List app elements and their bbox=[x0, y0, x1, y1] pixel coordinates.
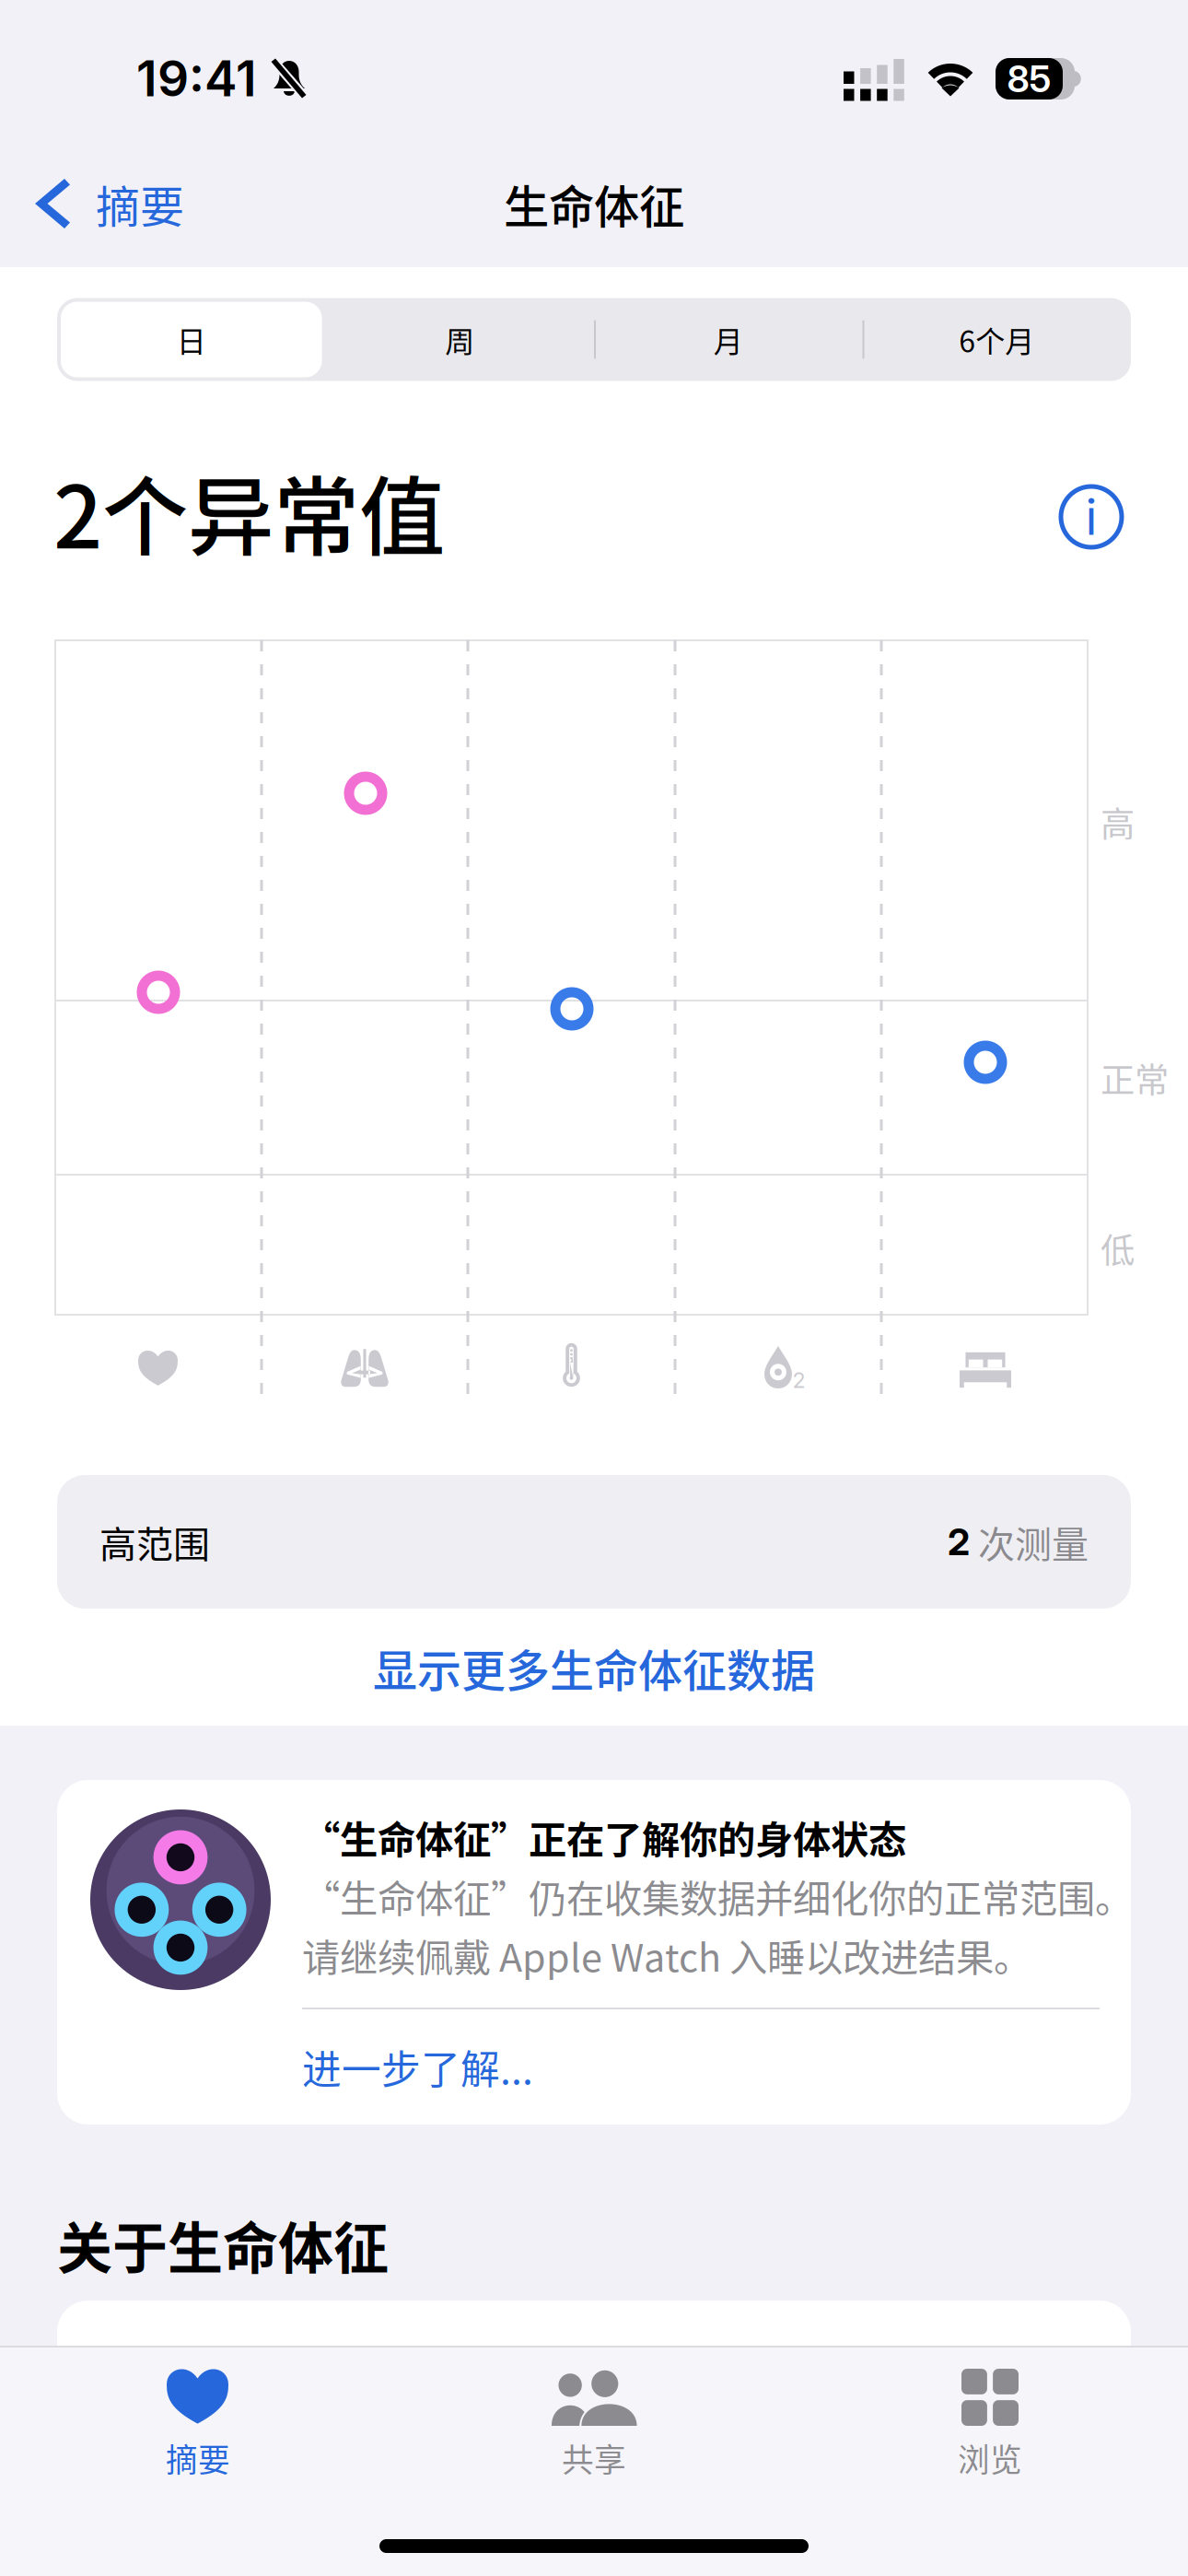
button[interactable]: 进一步了解... bbox=[302, 2009, 1100, 2125]
button[interactable]: 周 bbox=[326, 298, 594, 381]
staticText: 日 bbox=[177, 318, 206, 361]
staticText: 高范围 bbox=[99, 1515, 210, 1568]
staticText: 摘要 bbox=[96, 172, 184, 236]
button[interactable]: 6个月 bbox=[862, 298, 1131, 381]
staticText: 关于生命体征 bbox=[57, 2205, 389, 2285]
staticText: 进一步了解... bbox=[302, 2039, 533, 2095]
staticText: 19:41 bbox=[136, 49, 257, 108]
staticText: 低 bbox=[1101, 1224, 1135, 1273]
button[interactable]: 月 bbox=[594, 298, 862, 381]
staticText: 显示更多生命体征数据 bbox=[373, 1636, 815, 1700]
staticText: 请继续佩戴 Apple Watch 入睡以改进结果。 bbox=[302, 1927, 1031, 1983]
staticText: “生命体征”正在了解你的身体状态 bbox=[302, 1809, 906, 1865]
staticText: 6个月 bbox=[959, 318, 1034, 361]
staticText: 高 bbox=[1101, 797, 1135, 847]
staticText: 次测量 bbox=[978, 1515, 1089, 1568]
staticText: 2个异常值 bbox=[53, 449, 445, 573]
staticText: 周 bbox=[445, 318, 474, 361]
staticText: 85 bbox=[1007, 56, 1051, 101]
button[interactable]: 浏览 bbox=[792, 2346, 1188, 2502]
button[interactable]: 显示更多生命体征数据 bbox=[0, 1610, 1188, 1726]
button[interactable]: 高范围 bbox=[57, 1475, 1131, 1609]
staticText: 正常 bbox=[1101, 1053, 1169, 1103]
button[interactable]: 关于生命体征 bbox=[1052, 477, 1131, 556]
button[interactable]: 日 bbox=[57, 298, 326, 381]
staticText: 摘要 bbox=[166, 2435, 230, 2481]
staticText: 月 bbox=[714, 318, 743, 361]
button[interactable]: 摘要 bbox=[0, 2346, 396, 2502]
staticText: “生命体征”仍在收集数据并细化你的正常范围。 bbox=[302, 1868, 1133, 1924]
button[interactable]: 摘要 bbox=[0, 140, 230, 267]
staticText: 共享 bbox=[562, 2435, 626, 2481]
staticText: i bbox=[1085, 487, 1097, 547]
staticText: 浏览 bbox=[958, 2435, 1022, 2481]
staticText: 2 bbox=[948, 1520, 970, 1564]
staticText: 生命体征 bbox=[504, 171, 684, 237]
staticText: 2 bbox=[792, 1367, 805, 1393]
button[interactable]: 共享 bbox=[396, 2346, 792, 2502]
